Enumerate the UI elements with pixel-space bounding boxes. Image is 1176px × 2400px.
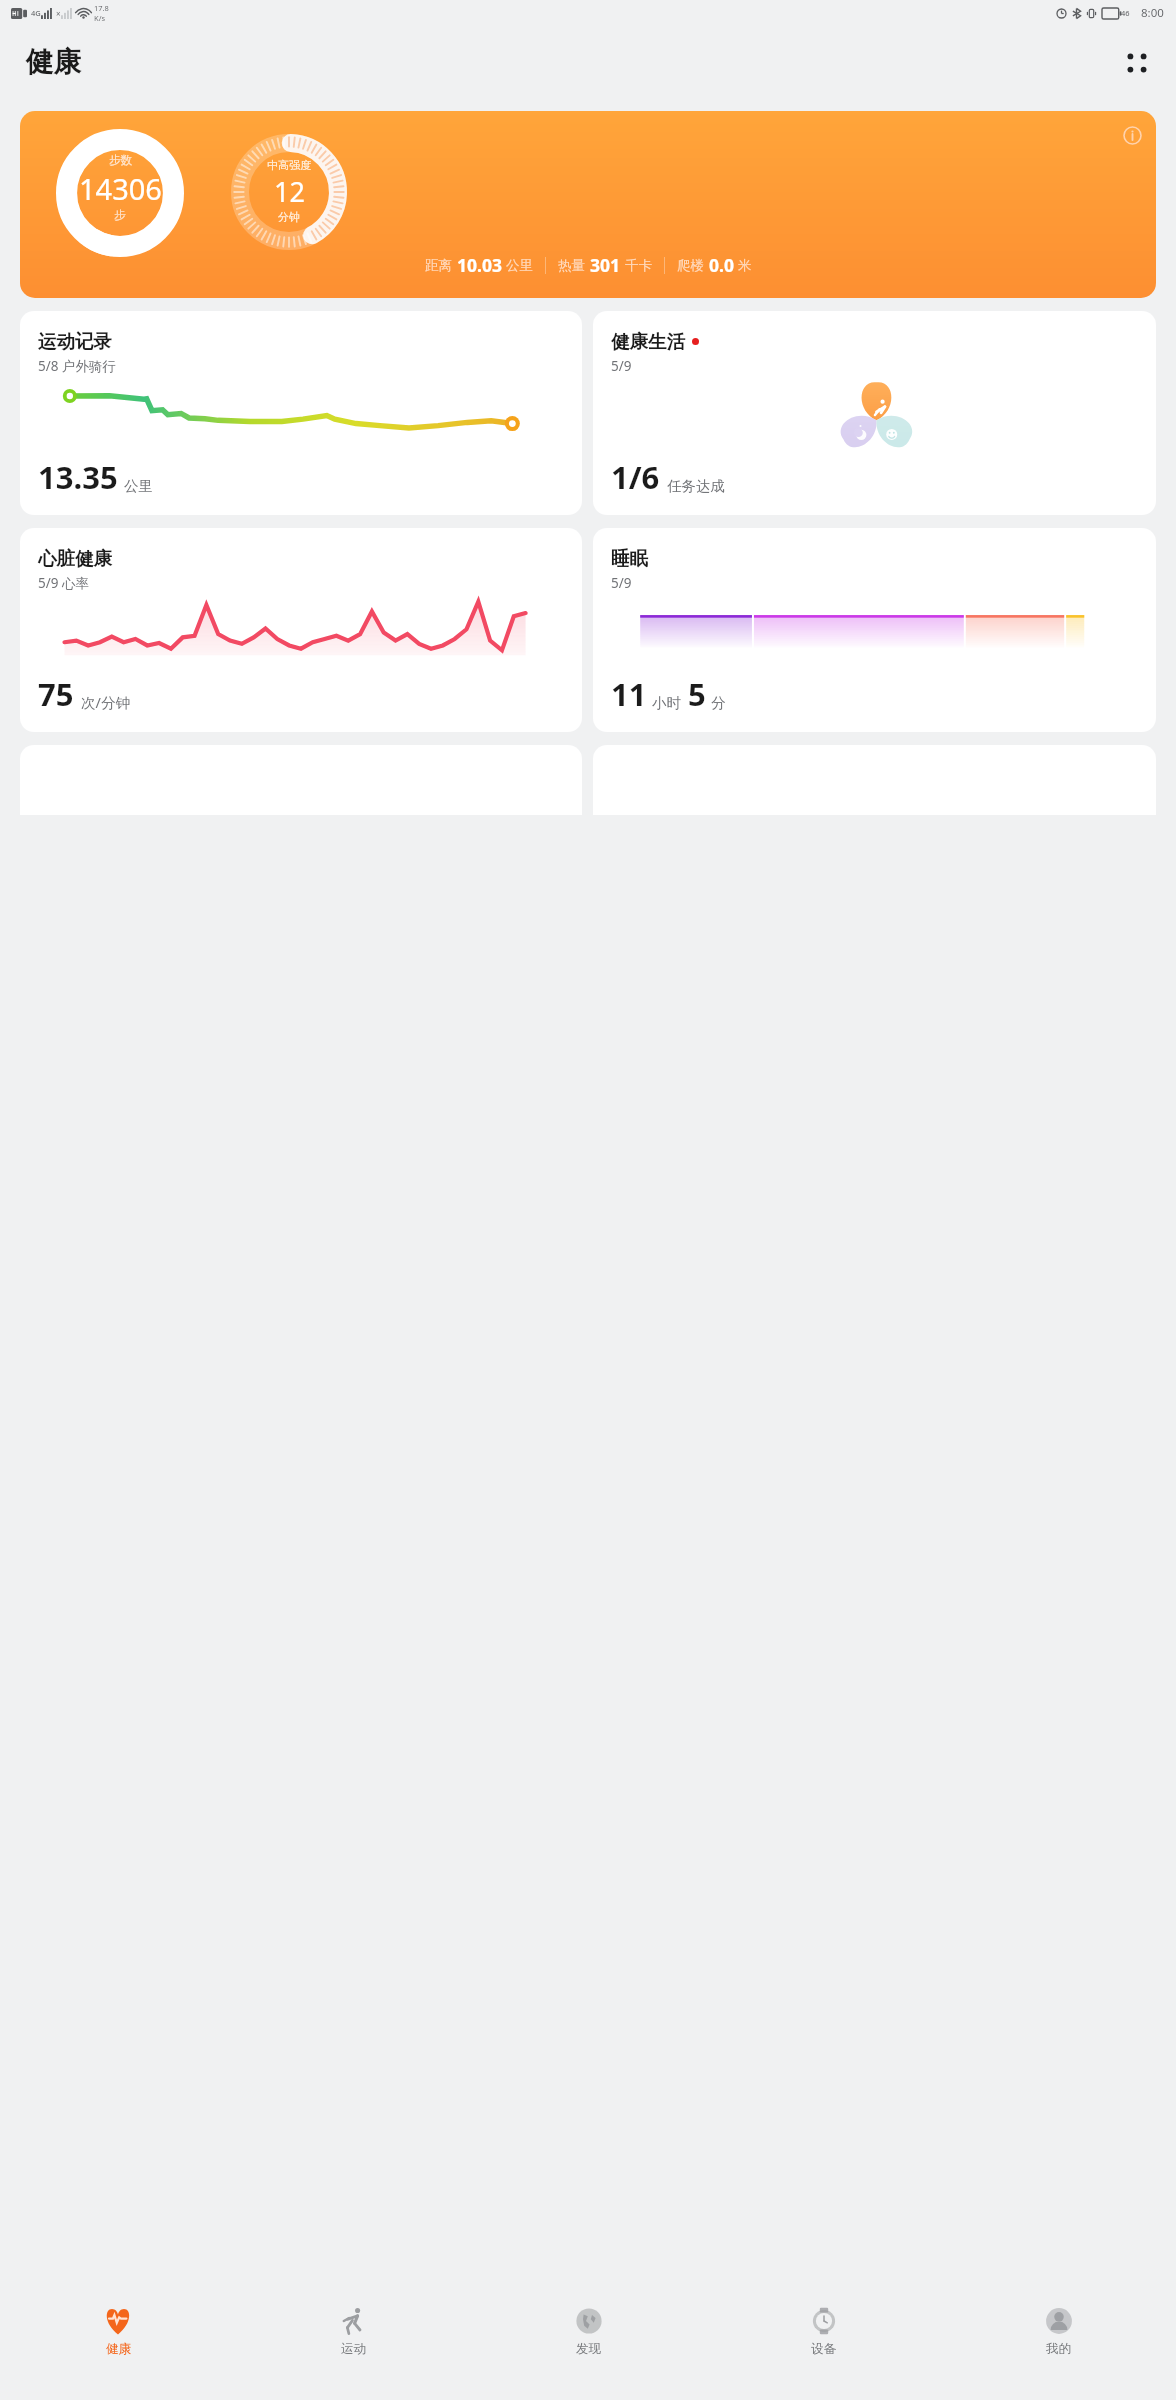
button[interactable]: 运动记录 [20, 311, 582, 515]
staticText: 5/9 心率 [38, 574, 89, 592]
staticText: 12 [274, 173, 305, 210]
staticText: 13.35 [38, 456, 118, 498]
button[interactable]: 健康 [0, 2296, 236, 2400]
staticText: K/s [94, 13, 106, 23]
staticText: 5/9 [611, 574, 632, 592]
staticText: 健康 [106, 2341, 131, 2357]
staticText: 热量 [558, 257, 585, 274]
staticText: 步 [114, 208, 126, 222]
staticText: 46 [1121, 8, 1130, 18]
staticText: 步数 [109, 153, 132, 167]
staticText: 运动记录 [38, 330, 112, 353]
staticText: 中高强度 [267, 158, 311, 172]
button[interactable]: 设备 [706, 2296, 941, 2400]
staticText: 10.03 [457, 253, 502, 277]
staticText: 分钟 [278, 210, 300, 224]
staticText: 75 [38, 673, 74, 715]
staticText: 设备 [811, 2341, 836, 2357]
staticText: 距离 [425, 257, 452, 274]
staticText: 5 [688, 673, 706, 715]
button[interactable]: 健康生活 [593, 311, 1156, 515]
staticText: 健康生活 [611, 330, 685, 353]
staticText: 分 [711, 694, 726, 712]
staticText: 5/8 户外骑行 [38, 357, 116, 375]
staticText: 运动 [341, 2341, 366, 2357]
staticText: 11 [611, 673, 647, 715]
staticText: 心脏健康 [38, 547, 112, 570]
staticText: 公里 [124, 477, 153, 495]
staticText: 任务达成 [667, 477, 725, 495]
button[interactable]: 我的 [941, 2296, 1176, 2400]
staticText: 8:00 [1141, 5, 1164, 21]
staticText: 5/9 [611, 357, 632, 375]
staticText: 17.8 [94, 3, 109, 13]
staticText: 睡眠 [611, 547, 648, 570]
staticText: 0.0 [709, 253, 734, 277]
staticText: 米 [738, 257, 752, 274]
button[interactable]: Information [1112, 115, 1152, 155]
button[interactable]: 运动 [236, 2296, 471, 2400]
button[interactable]: 睡眠 [593, 528, 1156, 732]
button[interactable]: More options [1114, 40, 1160, 86]
staticText: 次/分钟 [81, 692, 130, 712]
staticText: 14306 [79, 169, 162, 208]
staticText: 发现 [576, 2341, 601, 2357]
staticText: 301 [590, 253, 621, 277]
staticText: 4G [31, 8, 41, 18]
button[interactable]: 发现 [471, 2296, 706, 2400]
staticText: × [56, 8, 61, 19]
staticText: 健康 [26, 45, 81, 80]
staticText: 千卡 [625, 257, 652, 274]
staticText: 公里 [506, 257, 533, 274]
staticText: 爬楼 [677, 257, 704, 274]
button[interactable]: 心脏健康 [20, 528, 582, 732]
button[interactable]: Information [20, 111, 1156, 298]
staticText: 我的 [1046, 2341, 1071, 2357]
staticText: 小时 [652, 694, 681, 712]
staticText: 1/6 [611, 456, 660, 498]
